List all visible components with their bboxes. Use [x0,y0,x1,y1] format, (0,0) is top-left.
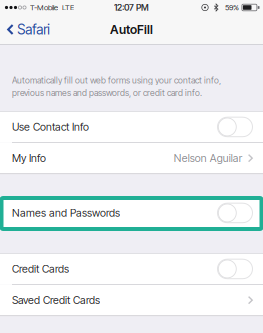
button[interactable]: Credit Cards [0,254,263,284]
staticText: Safari [17,21,50,38]
button[interactable]: Safari [0,15,58,44]
button[interactable]: Use Contact Info [0,112,263,142]
button[interactable]: My Info [0,143,263,173]
staticText: 59% [225,3,239,12]
staticText: T-Mobile [30,3,58,12]
staticText: previous names and passwords, or credit … [12,88,202,98]
staticText: Nelson Aguilar [174,152,242,165]
staticText: Saved Credit Cards [12,294,100,307]
staticText: Names and Passwords [12,206,120,219]
staticText: Credit Cards [12,262,69,275]
staticText: AutoFill [110,22,153,37]
button[interactable]: Names and Passwords [0,198,263,228]
staticText: Use Contact Info [12,120,89,133]
staticText: LTE [62,3,74,12]
staticText: 12:07 PM [114,2,149,13]
staticText: Automatically fill out web forms using y… [12,75,221,85]
button[interactable]: Saved Credit Cards [0,285,263,315]
staticText: My Info [12,152,46,165]
